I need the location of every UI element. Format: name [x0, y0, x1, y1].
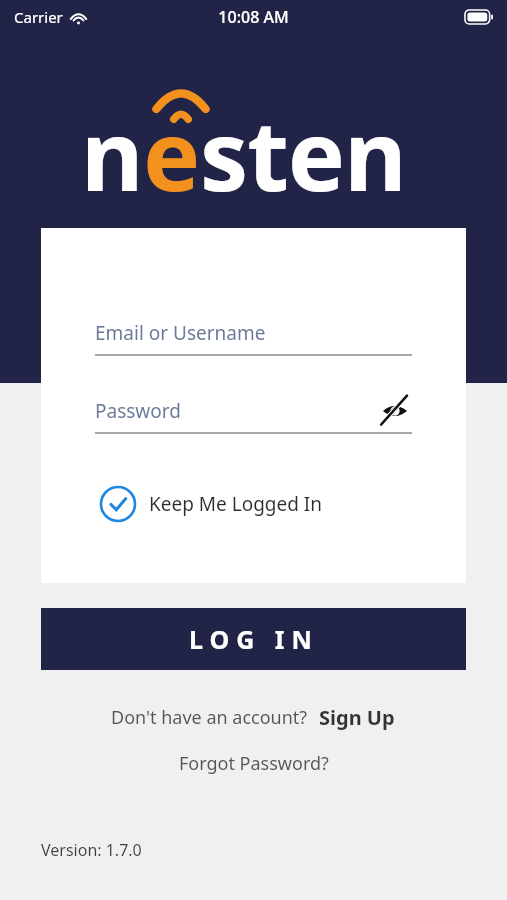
- button[interactable]: Sign Up: [317, 702, 397, 733]
- staticText: e: [143, 88, 200, 198]
- staticText: Forgot Password?: [179, 751, 329, 776]
- staticText: Password: [95, 398, 181, 424]
- button[interactable]: LOG IN: [41, 608, 466, 670]
- button[interactable]: Password: [95, 388, 412, 434]
- button[interactable]: Show password: [378, 394, 412, 428]
- button[interactable]: Keep Me Logged In: [95, 481, 327, 527]
- button[interactable]: Forgot Password?: [173, 748, 335, 779]
- staticText: LOG IN: [189, 622, 319, 656]
- staticText: 10:08 AM: [218, 6, 289, 28]
- staticText: Carrier: [14, 7, 63, 27]
- button[interactable]: Email or Username: [95, 310, 412, 356]
- staticText: n: [81, 88, 143, 198]
- staticText: Don't have an account?: [111, 705, 308, 730]
- staticText: Keep Me Logged In: [149, 491, 323, 517]
- staticText: Sign Up: [319, 704, 395, 731]
- staticText: Email or Username: [95, 320, 266, 346]
- staticText: Version: 1.7.0: [41, 839, 142, 861]
- staticText: sten: [200, 88, 406, 198]
